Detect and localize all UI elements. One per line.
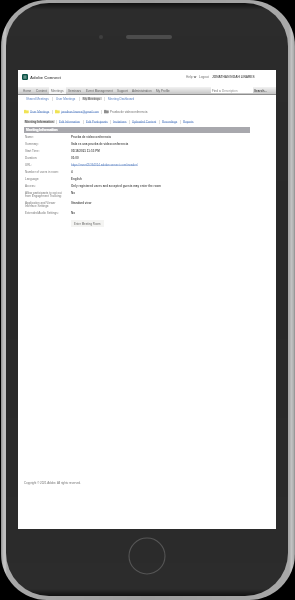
button[interactable]: Meetings (49, 87, 66, 94)
staticText: Extended Audio Settings: (25, 211, 59, 214)
staticText: My Meetings (83, 97, 101, 100)
staticText: Only registered users and accepted guest… (71, 184, 162, 187)
staticText: Description (222, 89, 238, 92)
staticText: Prueba de videoconferencia (71, 135, 112, 138)
staticText: Event Management (86, 89, 113, 92)
staticText: Edit Participants (86, 120, 108, 123)
staticText: | (102, 97, 107, 100)
staticText: Administration (132, 89, 152, 92)
staticText: Edit Information (59, 120, 81, 123)
staticText: Start Time: (25, 149, 40, 152)
staticText: Seminars (68, 89, 82, 92)
button[interactable]: Uploaded Content (131, 120, 158, 123)
staticText: User Meetings (56, 97, 76, 100)
staticText: Invitations (113, 120, 127, 123)
button[interactable]: Reports (182, 120, 195, 123)
staticText: | (50, 110, 55, 113)
staticText: 4 (71, 170, 73, 173)
button[interactable]: My Meetings (82, 97, 102, 100)
button[interactable]: Recordings (161, 120, 179, 123)
button[interactable]: Home (21, 87, 34, 94)
staticText: Name: (25, 135, 34, 138)
staticText: 01:00 (71, 156, 79, 159)
staticText: Find a (212, 89, 222, 92)
staticText: Standard view (71, 201, 92, 204)
staticText: | (77, 97, 82, 100)
button[interactable]: Meeting Dashboard (107, 97, 136, 100)
staticText: Duration: (25, 156, 38, 159)
staticText: Meeting Information (26, 128, 58, 132)
staticText: Application and Viewer Interface Setting… (25, 201, 56, 207)
staticText: Meeting Information (25, 120, 54, 123)
staticText: URL: (25, 163, 32, 166)
button[interactable]: Seminars (66, 87, 84, 94)
staticText: Adobe Connect (30, 75, 61, 80)
staticText: My Profile (156, 89, 170, 92)
button[interactable]: Administration (130, 87, 154, 94)
staticText: JONATHAN NOAH LINARES (212, 75, 255, 79)
staticText: Access: (25, 184, 36, 187)
staticText: 01/18/2021 11:55 PM (71, 149, 100, 152)
staticText: Language: (25, 177, 40, 180)
staticText: Uploaded Content (132, 120, 157, 123)
staticText: No (71, 211, 75, 214)
button[interactable]: Support (115, 87, 130, 94)
staticText: Content (36, 89, 47, 92)
staticText: Reports (183, 120, 194, 123)
button[interactable]: Enter Meeting Room (71, 220, 104, 227)
staticText: Recordings (162, 120, 178, 123)
staticText: Logout (199, 75, 209, 79)
staticText: Meetings (51, 89, 64, 92)
staticText: Support (117, 89, 128, 92)
button[interactable]: Find a (211, 87, 253, 93)
staticText: | (99, 110, 104, 113)
button[interactable]: Shared Meetings (25, 97, 50, 100)
button[interactable]: User Meetings (55, 97, 77, 100)
button[interactable]: Invitations (112, 120, 128, 123)
staticText: jonathan.linares@gmail.com (61, 110, 99, 113)
staticText: User Meetings (30, 110, 50, 113)
staticText: https://meet05364014.adobeconnect.com/in… (71, 163, 138, 166)
staticText: English (71, 177, 82, 180)
staticText: Prueba de videoconferencia (110, 110, 148, 113)
staticText: Allow participants to opt out from Engag… (25, 191, 62, 197)
staticText: Help (186, 75, 193, 79)
staticText: Home (23, 89, 32, 92)
staticText: No (71, 191, 75, 194)
staticText: Number of users in room: (25, 170, 59, 173)
button[interactable]: My Profile (154, 87, 172, 94)
staticText: Shared Meetings (26, 97, 49, 100)
staticText: Search... (254, 89, 267, 92)
staticText: Copyright © 2021 Adobe. All rights reser… (24, 481, 81, 484)
staticText: | (50, 97, 55, 100)
button[interactable]: Meeting Information (24, 120, 55, 123)
staticText: Sala es una prueba de videoconferencia (71, 142, 129, 145)
button[interactable]: Content (34, 87, 49, 94)
staticText: Summary: (25, 142, 39, 145)
staticText: Meeting Dashboard (108, 97, 135, 100)
button[interactable]: Edit Participants (85, 120, 109, 123)
staticText: Enter Meeting Room (74, 222, 101, 225)
button[interactable]: Event Management (84, 87, 115, 94)
button[interactable]: Edit Information (58, 120, 82, 123)
